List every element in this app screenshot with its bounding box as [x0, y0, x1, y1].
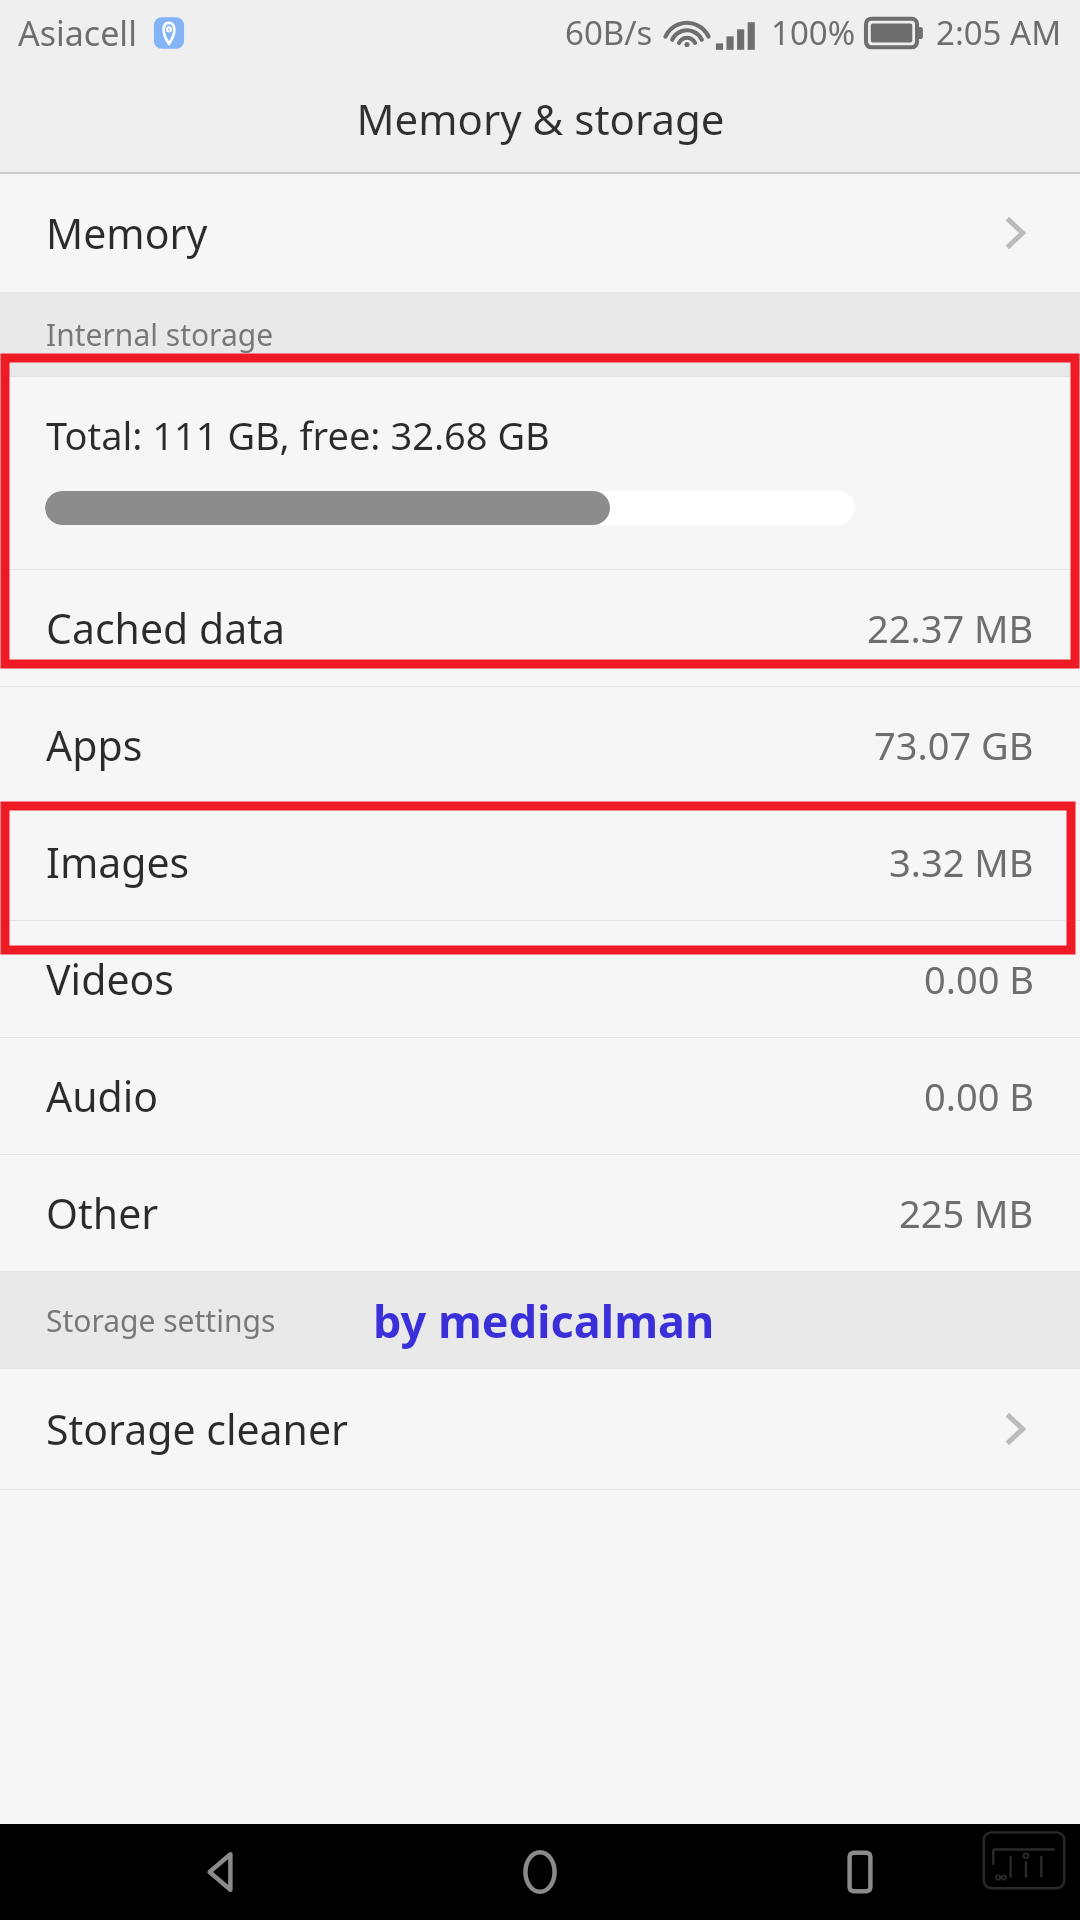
staticText: Images — [46, 834, 190, 890]
staticText: 2:05 AM — [936, 10, 1062, 55]
button[interactable]: Memory — [0, 174, 1080, 292]
button[interactable]: Other — [0, 1155, 1080, 1271]
staticText: 60B/s — [565, 10, 653, 55]
staticText: 3.32 MB — [889, 836, 1034, 888]
staticText: Videos — [46, 951, 174, 1007]
button[interactable]: Recent apps — [700, 1824, 1020, 1920]
staticText: 100% — [771, 10, 856, 55]
staticText: 225 MB — [899, 1187, 1034, 1239]
staticText: Cached data — [46, 600, 285, 656]
button[interactable]: Audio — [0, 1038, 1080, 1154]
button[interactable]: Storage cleaner — [0, 1369, 1080, 1489]
button[interactable]: Apps — [0, 687, 1080, 803]
staticText: by medicalman — [373, 1290, 715, 1351]
staticText: 73.07 GB — [874, 719, 1034, 771]
button[interactable]: Home — [380, 1824, 700, 1920]
button[interactable]: Cached data — [0, 570, 1080, 686]
staticText: Internal storage — [46, 314, 274, 355]
button[interactable]: Back — [60, 1824, 380, 1920]
staticText: 22.37 MB — [867, 602, 1034, 654]
staticText: Apps — [46, 717, 143, 773]
staticText: Other — [46, 1185, 159, 1241]
staticText: Memory — [46, 205, 208, 261]
staticText: Storage settings — [46, 1300, 276, 1341]
button[interactable]: Images — [0, 804, 1080, 920]
staticText: 0.00 B — [924, 1070, 1034, 1122]
staticText: Memory & storage — [356, 90, 725, 147]
staticText: Storage cleaner — [46, 1401, 349, 1457]
staticText: Audio — [46, 1068, 159, 1124]
staticText: Asiacell — [18, 10, 137, 56]
staticText: 0.00 B — [924, 953, 1034, 1005]
button[interactable]: Videos — [0, 921, 1080, 1037]
staticText: Total: 111 GB, free: 32.68 GB — [46, 409, 550, 461]
